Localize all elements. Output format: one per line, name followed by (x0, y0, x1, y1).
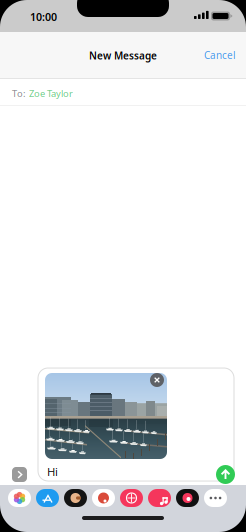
button[interactable]: Memoji (64, 489, 87, 507)
button[interactable]: Send (216, 465, 235, 484)
staticText: Zoe Taylor (29, 87, 73, 100)
button[interactable]: Remove attachment (150, 373, 164, 387)
staticText: New Message (89, 49, 157, 62)
button[interactable]: Digital Touch (176, 489, 199, 507)
button[interactable]: Cancel (199, 42, 241, 68)
staticText: Cancel (204, 48, 236, 62)
button[interactable]: Images (120, 489, 143, 507)
button[interactable]: Music (148, 489, 171, 507)
button[interactable]: Photos (8, 489, 31, 507)
button[interactable]: More (204, 489, 227, 507)
staticText: 10:00 (30, 9, 57, 24)
button[interactable]: App Store (36, 489, 59, 507)
button[interactable]: Show app drawer (12, 467, 27, 482)
staticText: To: (12, 87, 26, 100)
button[interactable]: Animoji (92, 489, 115, 507)
staticText: Hi (47, 464, 58, 479)
